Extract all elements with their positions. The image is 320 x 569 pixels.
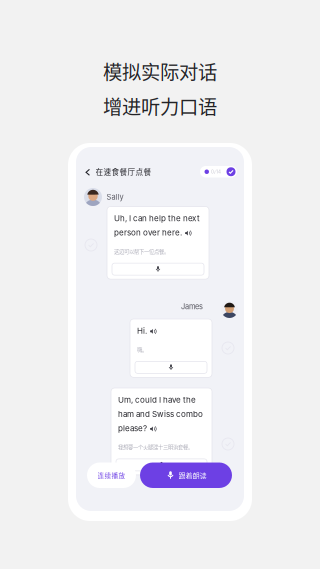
staticText: 在速食餐厅点餐 bbox=[95, 166, 151, 177]
staticText: Um, could I have the bbox=[118, 395, 196, 405]
staticText: 跟着朗读 bbox=[178, 470, 206, 480]
button[interactable]: 连续播放 bbox=[87, 462, 136, 488]
staticText: 模拟实际对话 bbox=[103, 57, 217, 85]
staticText: person over here. bbox=[114, 228, 182, 237]
staticText: 连续播放 bbox=[97, 470, 125, 480]
staticText: 这边可以帮下一位点餐。 bbox=[114, 247, 169, 255]
staticText: James bbox=[181, 302, 203, 311]
staticText: Sally bbox=[106, 192, 123, 201]
staticText: 嗨。 bbox=[137, 346, 147, 353]
staticText: Uh, I can help the next bbox=[114, 213, 200, 223]
button[interactable]: Back bbox=[81, 164, 94, 181]
staticText: 增进听力口语 bbox=[103, 92, 217, 120]
staticText: 我想要一个火腿瑞士三明治套餐。 bbox=[118, 443, 193, 451]
staticText: 0/14 bbox=[211, 169, 221, 175]
staticText: ham and Swiss combo bbox=[118, 409, 203, 419]
staticText: Hi. bbox=[137, 326, 147, 336]
staticText: please? bbox=[118, 424, 147, 433]
button[interactable]: 跟着朗读 bbox=[140, 462, 232, 488]
